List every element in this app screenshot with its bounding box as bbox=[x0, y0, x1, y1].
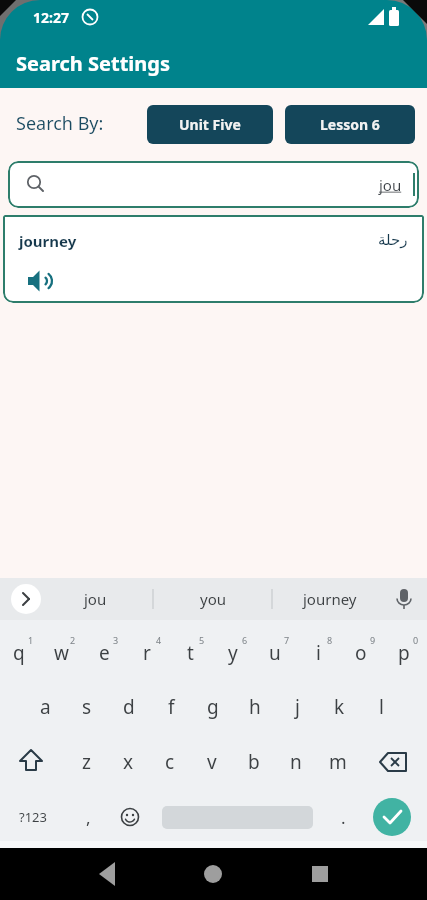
button[interactable]: k bbox=[319, 686, 359, 728]
staticText: b bbox=[248, 749, 260, 775]
button[interactable]: w bbox=[41, 632, 81, 674]
button[interactable]: you bbox=[178, 578, 248, 620]
button[interactable]: j bbox=[277, 686, 317, 728]
staticText: jou bbox=[84, 589, 107, 609]
button[interactable] bbox=[195, 856, 231, 892]
staticText: Lesson 6 bbox=[320, 115, 380, 134]
button[interactable] bbox=[90, 856, 126, 892]
button[interactable]: s bbox=[67, 686, 107, 728]
staticText: you bbox=[200, 589, 226, 609]
button[interactable]: m bbox=[318, 741, 358, 783]
staticText: 8 bbox=[327, 634, 333, 646]
button[interactable]: l bbox=[361, 686, 401, 728]
button[interactable]: journey bbox=[285, 578, 375, 620]
button[interactable] bbox=[112, 799, 148, 835]
button[interactable]: x bbox=[108, 741, 148, 783]
button[interactable] bbox=[11, 584, 41, 614]
button[interactable]: , bbox=[68, 796, 108, 838]
staticText: 7 bbox=[284, 634, 290, 646]
staticText: Search By: bbox=[16, 111, 104, 136]
staticText: p bbox=[398, 640, 410, 666]
staticText: . bbox=[341, 806, 346, 829]
staticText: 0 bbox=[413, 634, 419, 646]
button[interactable]: a bbox=[25, 686, 65, 728]
staticText: Search Settings bbox=[16, 50, 170, 77]
staticText: k bbox=[334, 694, 345, 720]
staticText: e bbox=[99, 640, 110, 666]
staticText: h bbox=[249, 694, 261, 720]
button[interactable]: Lesson 6 bbox=[285, 105, 415, 144]
button[interactable]: g bbox=[193, 686, 233, 728]
staticText: a bbox=[40, 694, 51, 720]
button[interactable]: n bbox=[276, 741, 316, 783]
button[interactable]: z bbox=[66, 741, 106, 783]
staticText: y bbox=[228, 640, 238, 666]
staticText: 9 bbox=[370, 634, 376, 646]
staticText: , bbox=[86, 806, 91, 829]
staticText: 6 bbox=[242, 634, 248, 646]
button[interactable]: d bbox=[109, 686, 149, 728]
staticText: g bbox=[207, 694, 219, 720]
staticText: t bbox=[187, 640, 194, 666]
button[interactable] bbox=[11, 742, 51, 782]
button[interactable]: u bbox=[255, 632, 295, 674]
staticText: 1 bbox=[28, 634, 34, 646]
button[interactable]: e bbox=[84, 632, 124, 674]
staticText: jou bbox=[379, 175, 402, 195]
staticText: x bbox=[123, 749, 134, 775]
button[interactable]: q bbox=[0, 632, 39, 674]
staticText: s bbox=[82, 694, 92, 720]
staticText: v bbox=[207, 749, 217, 775]
button[interactable]: b bbox=[234, 741, 274, 783]
staticText: i bbox=[316, 640, 321, 666]
staticText: c bbox=[165, 749, 175, 775]
button[interactable] bbox=[373, 798, 411, 836]
button[interactable]: jou bbox=[8, 161, 419, 208]
staticText: Unit Five bbox=[179, 115, 241, 134]
button[interactable]: i bbox=[298, 632, 338, 674]
staticText: r bbox=[143, 640, 151, 666]
staticText: j bbox=[295, 694, 300, 720]
staticText: z bbox=[82, 749, 91, 775]
staticText: w bbox=[54, 640, 69, 666]
button[interactable]: Unit Five bbox=[147, 105, 273, 144]
button[interactable]: p bbox=[384, 632, 424, 674]
staticText: m bbox=[329, 749, 347, 775]
button[interactable]: h bbox=[235, 686, 275, 728]
staticText: 3 bbox=[113, 634, 119, 646]
button[interactable]: c bbox=[150, 741, 190, 783]
button[interactable]: journey bbox=[3, 215, 424, 303]
staticText: d bbox=[123, 694, 135, 720]
staticText: l bbox=[379, 694, 384, 720]
button[interactable] bbox=[302, 856, 338, 892]
staticText: رحلة bbox=[378, 231, 408, 248]
button[interactable]: y bbox=[213, 632, 253, 674]
staticText: u bbox=[269, 640, 281, 666]
staticText: journey bbox=[19, 231, 77, 251]
staticText: 4 bbox=[156, 634, 162, 646]
staticText: 5 bbox=[199, 634, 205, 646]
button[interactable]: v bbox=[192, 741, 232, 783]
staticText: o bbox=[355, 640, 367, 666]
button[interactable]: jou bbox=[60, 578, 130, 620]
staticText: 12:27 bbox=[33, 8, 69, 27]
button[interactable]: o bbox=[341, 632, 381, 674]
button[interactable]: ?123 bbox=[13, 796, 53, 838]
staticText: n bbox=[290, 749, 302, 775]
button[interactable]: f bbox=[151, 686, 191, 728]
button[interactable]: . bbox=[323, 796, 363, 838]
staticText: journey bbox=[303, 589, 357, 609]
staticText: f bbox=[168, 694, 175, 720]
staticText: q bbox=[13, 640, 25, 666]
staticText: 2 bbox=[70, 634, 76, 646]
staticText: ?123 bbox=[19, 808, 47, 826]
button[interactable] bbox=[374, 742, 414, 782]
button[interactable]: r bbox=[127, 632, 167, 674]
button[interactable]: t bbox=[170, 632, 210, 674]
